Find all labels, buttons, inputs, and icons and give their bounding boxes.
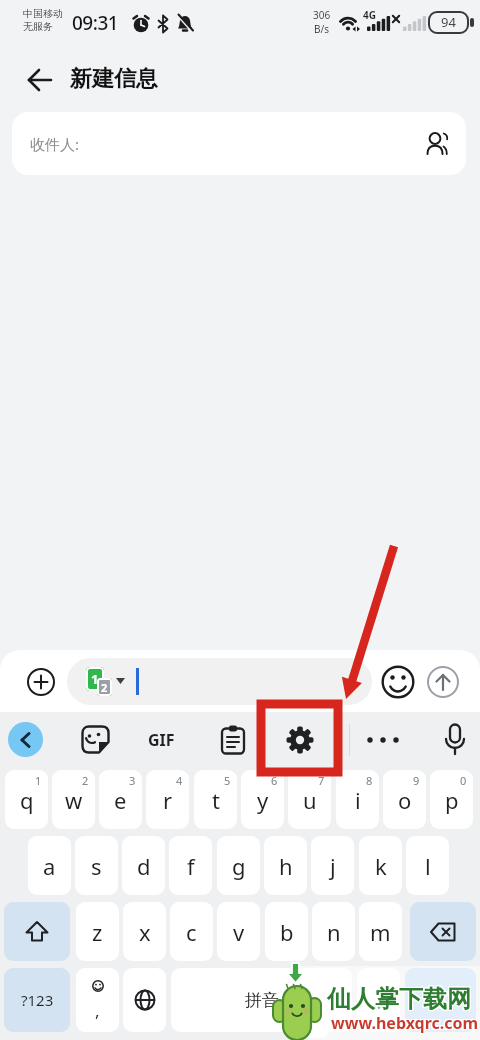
button[interactable]: 1 <box>67 658 372 705</box>
staticText: 1 <box>35 773 42 788</box>
staticText: 仙人掌下载网 <box>328 985 472 1015</box>
staticText: y <box>257 785 269 815</box>
staticText: k <box>375 851 387 881</box>
button[interactable]: . <box>357 968 400 1032</box>
button[interactable]: m <box>359 902 402 961</box>
button[interactable]: k <box>359 836 402 895</box>
staticText: n <box>327 917 341 947</box>
button[interactable] <box>4 902 70 961</box>
staticText: g <box>232 851 246 881</box>
staticText: 5 <box>224 773 231 788</box>
staticText: 收件人: <box>30 134 80 154</box>
staticText: w <box>65 785 83 815</box>
staticText: z <box>92 917 103 947</box>
button[interactable]: l <box>406 836 449 895</box>
button[interactable]: ?123 <box>4 968 70 1032</box>
staticText: 0 <box>460 773 467 788</box>
button[interactable]: z <box>76 902 119 961</box>
staticText: o <box>398 785 412 815</box>
button[interactable]: t <box>194 770 237 829</box>
staticText: c <box>186 917 197 947</box>
button[interactable] <box>381 665 415 699</box>
staticText: l <box>425 851 431 881</box>
button[interactable] <box>8 722 43 757</box>
button[interactable]: e <box>99 770 142 829</box>
button[interactable] <box>424 130 452 158</box>
staticText: t <box>212 785 220 815</box>
button[interactable] <box>363 730 405 750</box>
staticText: www.hebxqrc.com <box>330 1012 478 1034</box>
staticText: 无服务 <box>23 20 53 33</box>
button[interactable] <box>427 666 459 698</box>
button[interactable]: g <box>217 836 260 895</box>
button[interactable]: 拼音 <box>171 968 352 1032</box>
staticText: 仙人掌下载网 <box>327 984 471 1014</box>
button[interactable]: s <box>75 836 118 895</box>
button[interactable]: 收件人: <box>12 112 466 175</box>
staticText: 中国移动 <box>23 7 63 20</box>
staticText: . <box>376 985 382 1015</box>
staticText: 94 <box>441 13 456 31</box>
button[interactable] <box>27 668 55 696</box>
staticText: B/s <box>314 22 330 36</box>
staticText: www.hebxqrc.com <box>332 1011 480 1033</box>
staticText: i <box>355 785 361 815</box>
button[interactable]: h <box>264 836 307 895</box>
staticText: v <box>233 917 245 947</box>
button[interactable] <box>443 723 467 757</box>
staticText: d <box>137 851 151 881</box>
button[interactable]: f <box>169 836 212 895</box>
button[interactable]: b <box>265 902 308 961</box>
staticText: 3 <box>129 773 136 788</box>
button[interactable]: p <box>430 770 473 829</box>
staticText: 仙人掌下载网 <box>327 985 471 1015</box>
button[interactable]: q <box>5 770 48 829</box>
staticText: 7 <box>318 773 325 788</box>
staticText: m <box>370 917 391 947</box>
button[interactable]: i <box>336 770 379 829</box>
staticText: u <box>303 785 317 815</box>
button[interactable]: n <box>312 902 355 961</box>
staticText: 拼音 <box>245 990 279 1011</box>
button[interactable]: u <box>288 770 331 829</box>
staticText: s <box>91 851 102 881</box>
staticText: 9 <box>413 773 420 788</box>
staticText: b <box>280 917 294 947</box>
staticText: 仙人掌下载网 <box>328 983 472 1013</box>
staticText: 2 <box>101 680 108 695</box>
button[interactable]: , <box>76 968 119 1032</box>
button[interactable]: d <box>122 836 165 895</box>
button[interactable]: o <box>383 770 426 829</box>
staticText: 8 <box>366 773 373 788</box>
button[interactable]: x <box>123 902 166 961</box>
button[interactable]: w <box>52 770 95 829</box>
staticText: h <box>279 851 293 881</box>
staticText: ?123 <box>21 990 54 1010</box>
staticText: 仙人掌下载网 <box>326 984 470 1014</box>
button[interactable]: r <box>146 770 189 829</box>
button[interactable]: c <box>170 902 213 961</box>
staticText: , <box>95 999 100 1022</box>
staticText: www.hebxqrc.com <box>331 1012 479 1034</box>
button[interactable]: GIF <box>148 729 175 751</box>
staticText: f <box>187 851 195 881</box>
staticText: www.hebxqrc.com <box>331 1013 479 1035</box>
button[interactable] <box>81 725 110 754</box>
button[interactable]: v <box>217 902 260 961</box>
staticText: p <box>445 785 459 815</box>
button[interactable] <box>220 725 246 755</box>
button[interactable]: y <box>241 770 284 829</box>
staticText: www.hebxqrc.com <box>332 1013 480 1035</box>
staticText: 仙人掌下载网 <box>328 984 472 1014</box>
button[interactable] <box>405 968 476 1032</box>
button[interactable] <box>26 66 54 94</box>
button[interactable] <box>410 902 476 961</box>
button[interactable] <box>285 725 315 755</box>
staticText: www.hebxqrc.com <box>331 1011 479 1033</box>
staticText: 仙人掌下载网 <box>327 983 471 1013</box>
button[interactable]: a <box>28 836 71 895</box>
button[interactable] <box>123 968 166 1032</box>
button[interactable]: j <box>311 836 354 895</box>
staticText: 新建信息 <box>70 65 158 93</box>
staticText: 306 <box>313 8 331 22</box>
